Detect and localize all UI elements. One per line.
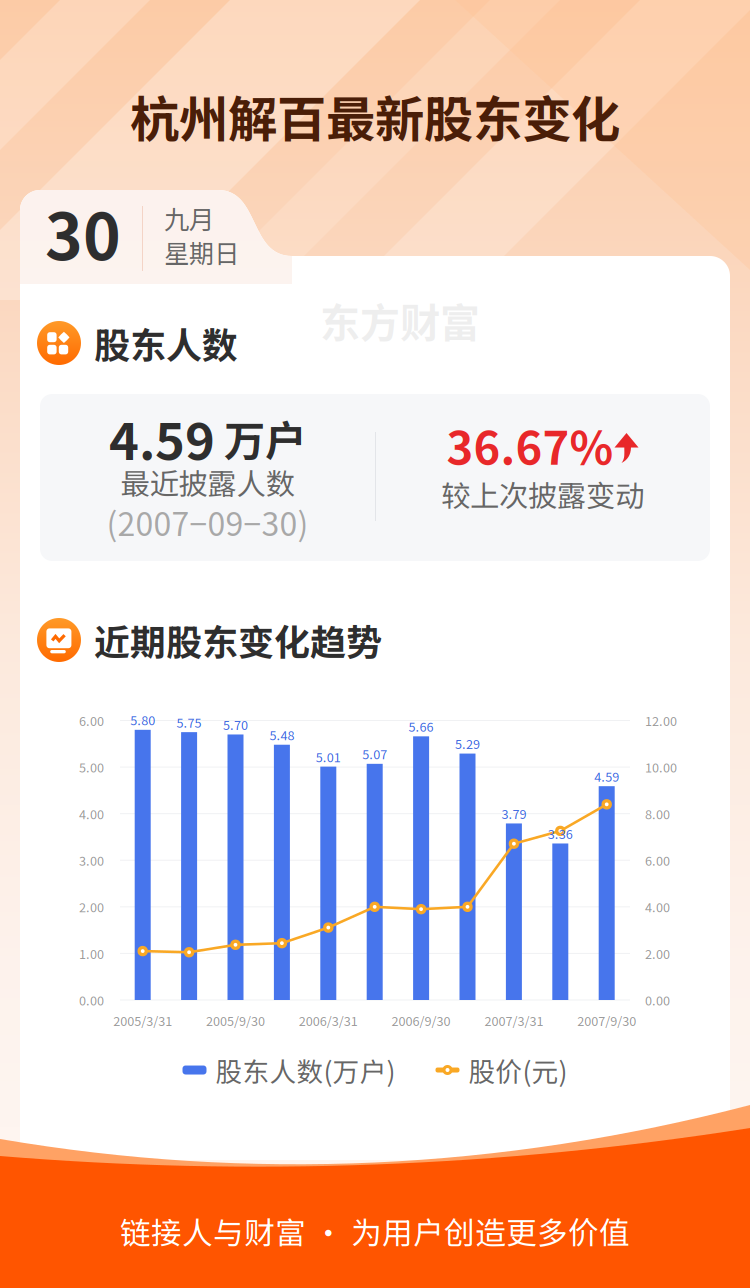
staticText: 2006/9/30 bbox=[392, 1011, 451, 1030]
staticText: 股价(元) bbox=[468, 1051, 567, 1089]
staticText: 5.48 bbox=[269, 726, 294, 744]
staticText: 2005/9/30 bbox=[206, 1011, 265, 1030]
staticText: 5.66 bbox=[409, 717, 434, 735]
staticText: 5.01 bbox=[316, 747, 341, 766]
staticText: 杭州解百最新股东变化 bbox=[130, 80, 620, 152]
staticText: 2007/9/30 bbox=[577, 1011, 636, 1030]
staticText: 6.00 bbox=[79, 711, 104, 730]
staticText: 4.59 bbox=[109, 401, 215, 475]
staticText: 1.00 bbox=[79, 944, 104, 962]
staticText: (2007−09−30) bbox=[106, 499, 308, 545]
staticText: 链接人与财富 · 为用户创造更多价值 bbox=[120, 1209, 630, 1253]
staticText: 0.00 bbox=[79, 991, 104, 1009]
staticText: 36.67% bbox=[446, 412, 613, 478]
staticText: 0.00 bbox=[645, 991, 670, 1009]
staticText: 万户 bbox=[224, 408, 306, 468]
staticText: 4.00 bbox=[645, 898, 670, 916]
staticText: 东方财富 bbox=[320, 291, 480, 349]
staticText: 股东人数(万户) bbox=[215, 1051, 395, 1089]
staticText: 星期日 bbox=[164, 234, 239, 270]
staticText: 2.00 bbox=[79, 898, 104, 916]
staticText: 5.75 bbox=[177, 713, 202, 731]
staticText: 3.36 bbox=[548, 824, 573, 843]
staticText: 2005/3/31 bbox=[113, 1011, 172, 1030]
staticText: 九月 bbox=[164, 200, 214, 236]
staticText: 3.79 bbox=[501, 804, 526, 823]
staticText: 4.00 bbox=[79, 804, 104, 823]
staticText: 2007/3/31 bbox=[484, 1011, 543, 1030]
staticText: 8.00 bbox=[645, 804, 670, 823]
staticText: 3.00 bbox=[79, 851, 104, 869]
staticText: 30 bbox=[45, 186, 121, 278]
staticText: 12.00 bbox=[645, 711, 677, 730]
staticText: 较上次披露变动 bbox=[441, 473, 644, 515]
staticText: 10.00 bbox=[645, 758, 677, 776]
staticText: 2006/3/31 bbox=[299, 1011, 358, 1030]
staticText: 5.00 bbox=[79, 758, 104, 776]
staticText: 6.00 bbox=[645, 851, 670, 869]
staticText: 5.70 bbox=[223, 715, 248, 734]
staticText: 5.07 bbox=[362, 745, 387, 763]
staticText: 2.00 bbox=[645, 944, 670, 962]
staticText: 5.80 bbox=[130, 711, 155, 729]
staticText: 股东人数 bbox=[94, 317, 238, 369]
staticText: 最近披露人数 bbox=[120, 461, 294, 503]
staticText: 近期股东变化趋势 bbox=[94, 614, 382, 666]
staticText: 4.59 bbox=[594, 767, 619, 785]
staticText: 5.29 bbox=[455, 734, 480, 753]
